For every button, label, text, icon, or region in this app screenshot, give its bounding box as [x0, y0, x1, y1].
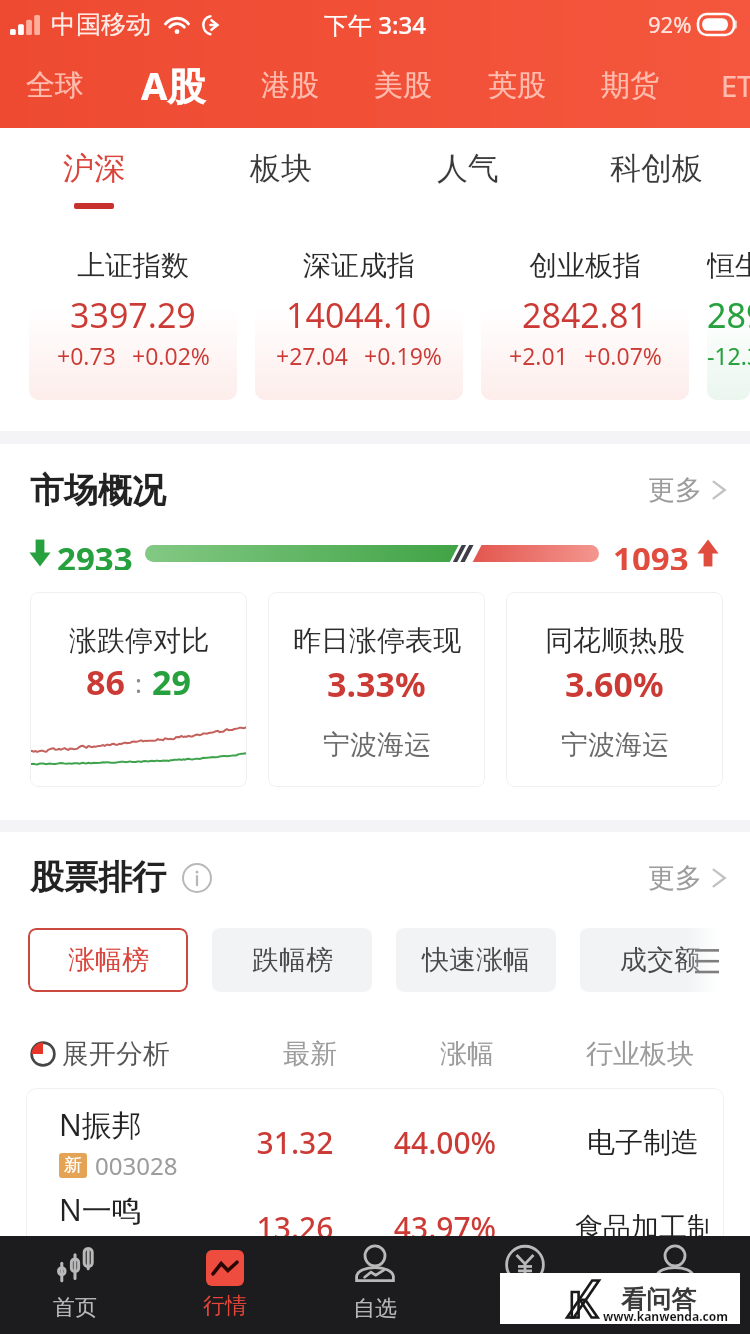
- staticText: 成交额: [620, 943, 701, 977]
- staticText: 期货: [601, 67, 659, 104]
- staticText: 美股: [374, 67, 432, 104]
- button[interactable]: N振邦: [26, 1100, 724, 1185]
- staticText: 最新: [230, 1037, 390, 1071]
- staticText: 板块: [250, 149, 312, 188]
- staticText: 股票排行: [30, 856, 166, 899]
- button[interactable]: N一鸣: [26, 1185, 724, 1270]
- button[interactable]: 更多: [648, 861, 728, 895]
- button[interactable]: 展开分析: [30, 1037, 230, 1071]
- staticText: :: [135, 665, 142, 700]
- staticText: 3.33%: [327, 661, 426, 707]
- button[interactable]: 创业板指: [481, 214, 689, 400]
- button[interactable]: 昨日涨停表现: [268, 592, 485, 787]
- button[interactable]: 更多: [648, 473, 728, 507]
- staticText: 中国移动: [51, 9, 151, 40]
- button[interactable]: A股: [141, 59, 206, 111]
- staticText: 自选: [353, 1295, 397, 1323]
- staticText: 行情: [203, 1292, 247, 1320]
- staticText: 3397.29: [70, 292, 196, 338]
- staticText: 上证指数: [77, 248, 189, 283]
- staticText: +0.73: [57, 340, 116, 371]
- staticText: +0.19%: [364, 340, 442, 371]
- button[interactable]: 英股: [488, 67, 546, 104]
- staticText: 沪深: [63, 149, 125, 188]
- button[interactable]: 涨跌停对比: [30, 592, 247, 787]
- button[interactable]: 上证指数: [29, 214, 237, 400]
- button[interactable]: 板块: [187, 128, 374, 214]
- button[interactable]: 期货: [601, 67, 659, 104]
- staticText: 2933: [57, 536, 133, 570]
- staticText: 新: [64, 1154, 82, 1177]
- button[interactable]: 人气: [374, 128, 562, 214]
- staticText: 44.00%: [361, 1122, 529, 1163]
- staticText: 食品加工制造: [575, 1210, 710, 1245]
- staticText: -12.34: [707, 340, 750, 371]
- staticText: 86: [86, 659, 125, 705]
- button[interactable]: 自选: [300, 1236, 450, 1334]
- button[interactable]: 美股: [374, 67, 432, 104]
- staticText: 英股: [488, 67, 546, 104]
- staticText: 人气: [437, 149, 499, 188]
- staticText: 2842.81: [522, 292, 648, 338]
- button[interactable]: 恒生指数: [707, 214, 750, 400]
- staticText: ETF: [721, 66, 750, 105]
- staticText: 恒生指数: [707, 248, 750, 283]
- staticText: 更多: [648, 473, 702, 507]
- button[interactable]: 沪深: [0, 128, 187, 214]
- staticText: 快速涨幅: [422, 943, 530, 977]
- staticText: 展开分析: [62, 1037, 170, 1071]
- staticText: 003028: [95, 1149, 178, 1182]
- staticText: 涨跌停对比: [69, 623, 209, 658]
- button[interactable]: 成交额: [580, 928, 740, 992]
- staticText: 首页: [53, 1294, 97, 1322]
- staticText: N振邦: [59, 1104, 142, 1145]
- staticText: +0.02%: [132, 340, 210, 371]
- staticText: 全球: [26, 67, 84, 104]
- staticText: 宁波海运: [561, 728, 669, 762]
- staticText: 涨幅: [390, 1037, 544, 1071]
- button[interactable]: 深证成指: [255, 214, 463, 400]
- staticText: 更多: [648, 861, 702, 895]
- staticText: 13.26: [229, 1207, 361, 1248]
- button[interactable]: More ranking lists: [686, 928, 750, 993]
- staticText: 同花顺热股: [545, 623, 685, 658]
- staticText: 看问答: [621, 1284, 696, 1315]
- button[interactable]: ETF: [721, 66, 750, 105]
- staticText: 深证成指: [303, 248, 415, 283]
- button[interactable]: 全球: [26, 67, 84, 104]
- staticText: 92%: [648, 9, 692, 39]
- button[interactable]: 首页: [0, 1236, 150, 1334]
- staticText: 新: [64, 1239, 82, 1262]
- staticText: 港股: [261, 67, 319, 104]
- button[interactable]: 快速涨幅: [396, 928, 556, 992]
- staticText: +2.01: [509, 340, 568, 371]
- staticText: 昨日涨停表现: [293, 623, 461, 658]
- staticText: 创业板指: [529, 248, 641, 283]
- staticText: 跌幅榜: [252, 943, 333, 977]
- staticText: www.kanwenda.com: [603, 1308, 728, 1324]
- button[interactable]: 涨幅榜: [28, 928, 188, 992]
- staticText: 电子制造: [587, 1125, 699, 1160]
- staticText: 31.32: [229, 1122, 361, 1163]
- button[interactable]: 港股: [261, 67, 319, 104]
- button[interactable]: 跌幅榜: [212, 928, 372, 992]
- staticText: 1093: [613, 536, 689, 570]
- button[interactable]: 我的: [600, 1236, 750, 1334]
- staticText: +27.04: [276, 340, 348, 371]
- staticText: 3.60%: [565, 661, 664, 707]
- staticText: +0.07%: [584, 340, 662, 371]
- staticText: 科创板: [610, 149, 703, 188]
- button[interactable]: 科创板: [562, 128, 750, 214]
- staticText: 605179: [95, 1234, 178, 1267]
- staticText: 涨幅榜: [68, 943, 149, 977]
- button[interactable]: 同花顺热股: [506, 592, 723, 787]
- staticText: 29: [152, 659, 191, 705]
- button[interactable]: 行情: [150, 1236, 300, 1334]
- staticText: A股: [141, 59, 206, 111]
- staticText: 43.97%: [361, 1207, 529, 1248]
- staticText: 宁波海运: [323, 728, 431, 762]
- staticText: 14044.10: [286, 292, 432, 338]
- staticText: 下午 3:34: [324, 8, 426, 41]
- button[interactable]: 交易: [450, 1236, 600, 1334]
